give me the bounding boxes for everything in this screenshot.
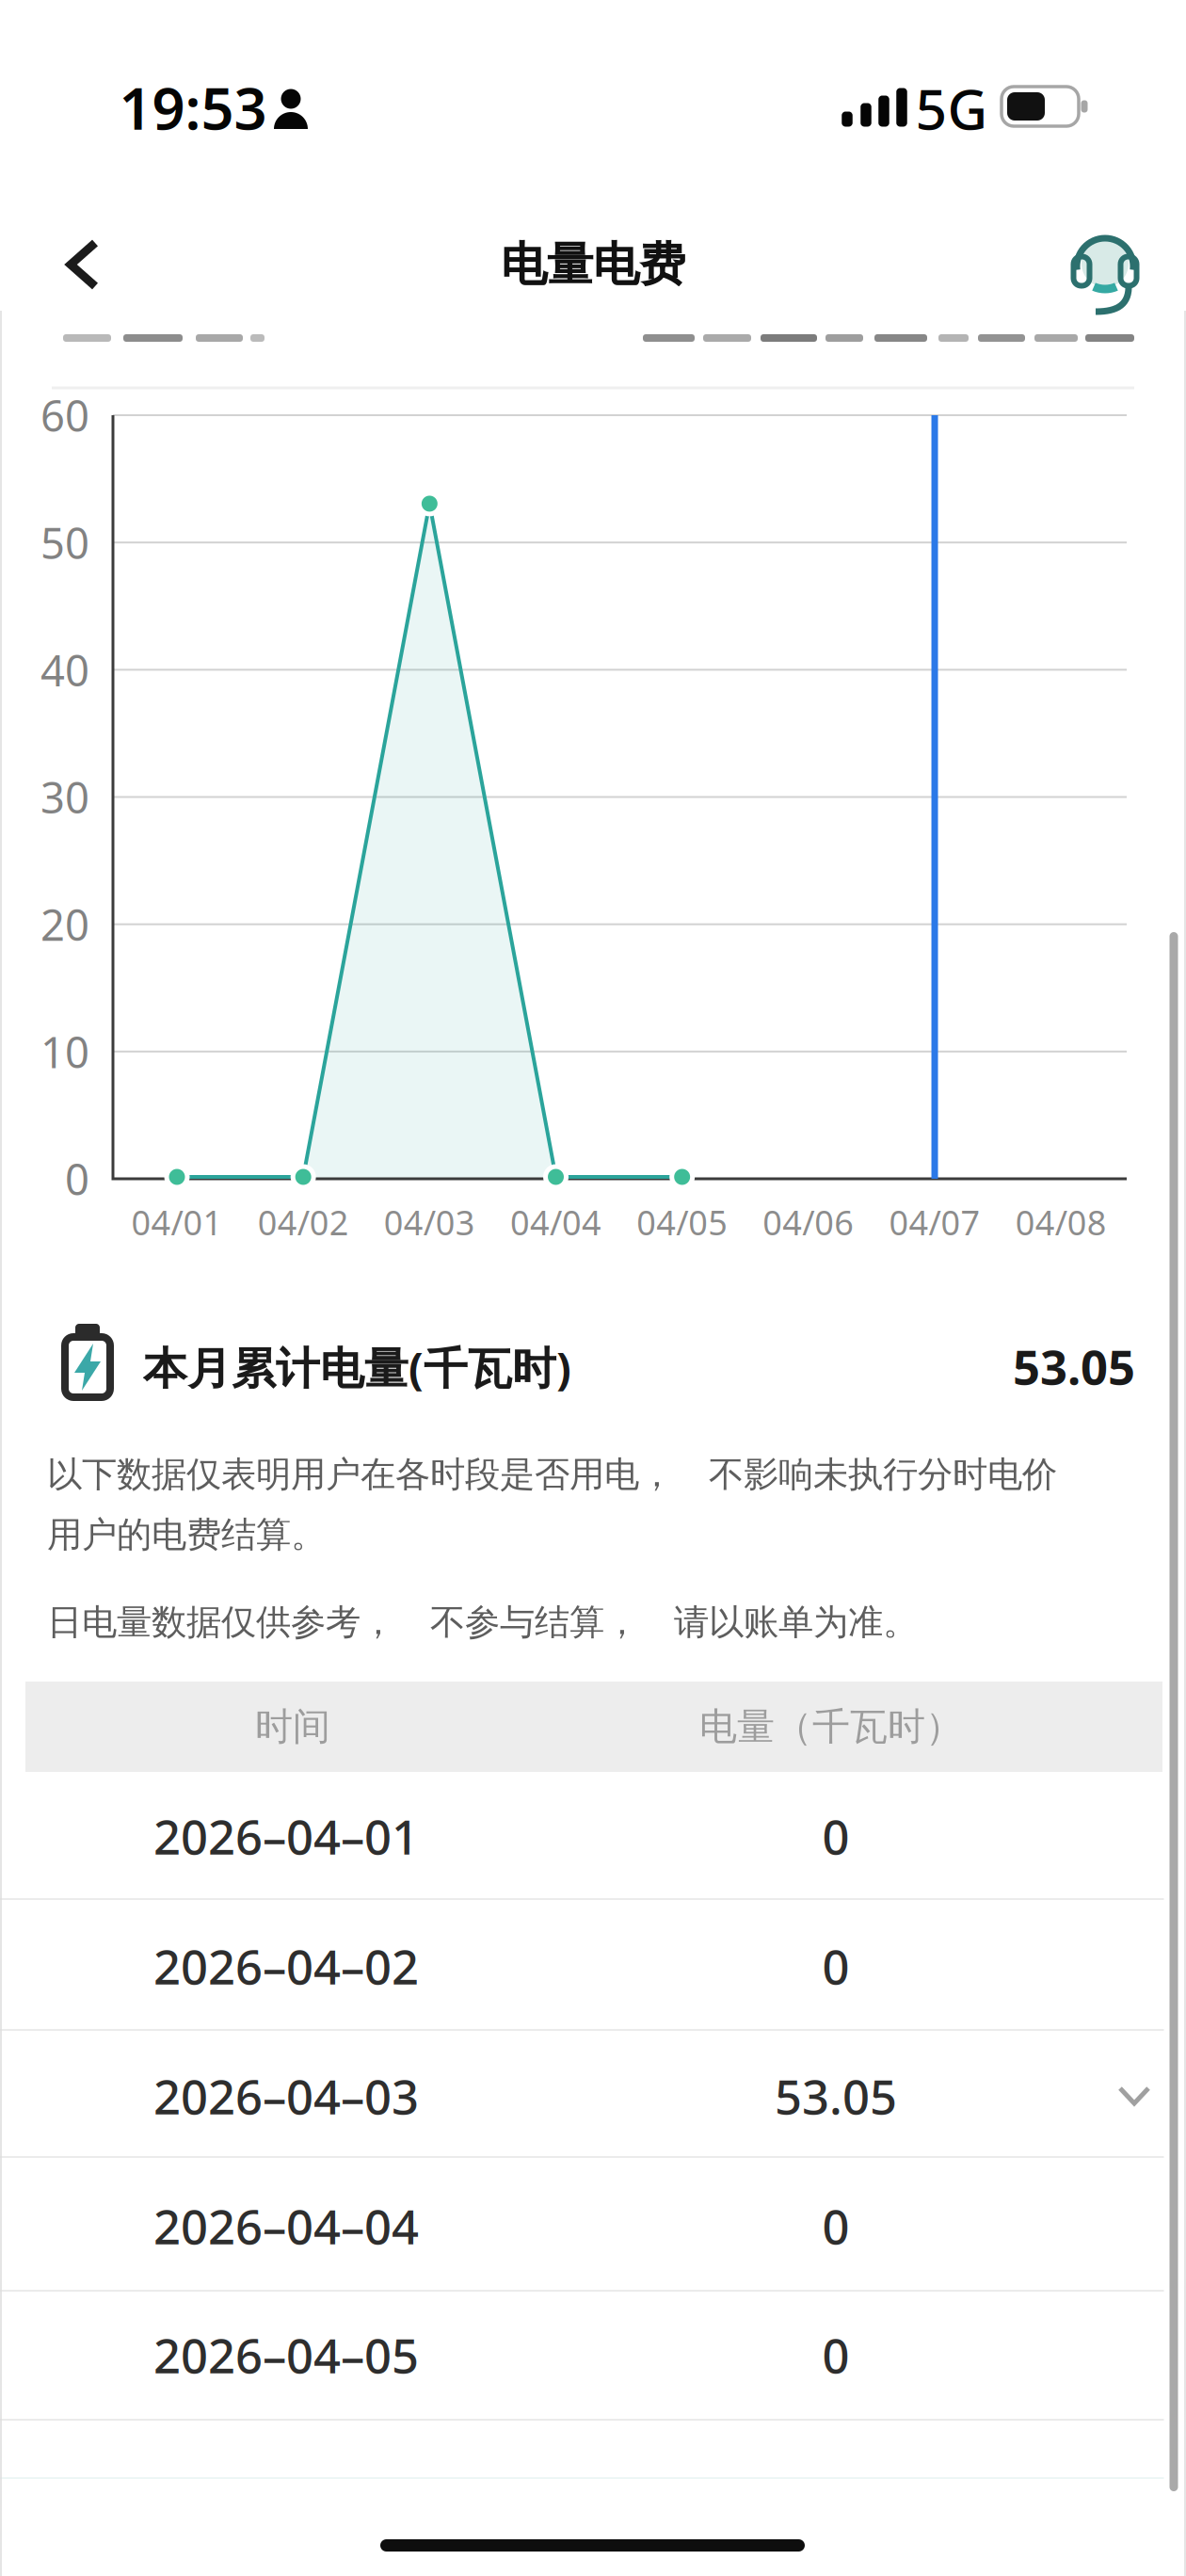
staticText: 以下数据仅表明用户在各时段是否用电， 不影响未执行分时电价 [47,1453,1057,1496]
staticText: 0 [65,1150,89,1207]
staticText: 2026–04–04 [153,2194,419,2257]
button[interactable]: 联系客服 [1069,225,1145,315]
staticText: 电量（千瓦时） [699,1704,963,1750]
staticText: 04/04 [510,1200,601,1245]
staticText: 本月累计电量(千瓦时) [143,1338,571,1396]
staticText: 19:53 [119,69,267,146]
staticText: 2026–04–02 [153,1934,419,1998]
staticText: 2026–04–01 [153,1804,419,1868]
staticText: 04/08 [1015,1200,1107,1245]
staticText: 0 [822,2323,849,2386]
staticText: 53.05 [1013,1335,1135,1398]
button[interactable]: 2026–04–03 53.05 展开 [0,2031,1186,2161]
staticText: 时间 [255,1704,330,1750]
staticText: 2026–04–03 [153,2064,419,2128]
staticText: 0 [822,2194,849,2257]
staticText: 20 [40,896,89,953]
staticText: 53.05 [775,2064,897,2128]
staticText: 2026–04–05 [153,2323,419,2386]
staticText: 0 [822,1934,849,1998]
staticText: 04/07 [889,1200,980,1245]
staticText: 04/06 [763,1200,854,1245]
staticText: 04/01 [131,1200,223,1245]
staticText: 日电量数据仅供参考， 不参与结算， 请以账单为准。 [47,1601,918,1644]
staticText: 60 [40,387,89,444]
staticText: 04/02 [258,1200,349,1245]
staticText: 用户的电费结算。 [47,1513,326,1556]
staticText: 10 [40,1023,89,1080]
staticText: 04/05 [636,1200,728,1245]
staticText: 30 [40,769,89,825]
staticText: 5G [915,72,988,145]
staticText: 50 [40,514,89,571]
staticText: 电量电费 [501,236,685,293]
staticText: 04/03 [384,1200,475,1245]
staticText: 40 [40,641,89,698]
button[interactable]: 返回 [45,236,158,293]
staticText: 0 [822,1804,849,1868]
